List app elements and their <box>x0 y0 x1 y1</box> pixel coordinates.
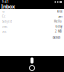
staticText: Date <box>2 25 8 28</box>
staticText: Send <box>53 36 60 39</box>
staticText: Size <box>2 30 7 33</box>
staticText: Alex <box>57 10 62 13</box>
staticText: Today <box>55 25 62 28</box>
staticText: Sam <box>58 15 62 18</box>
staticText: 9:41 <box>2 0 9 4</box>
staticText: Cc <box>2 15 5 18</box>
staticText: To <box>2 10 5 13</box>
button[interactable]: Send <box>52 36 61 39</box>
staticText: Inbox <box>1 3 15 10</box>
staticText: Subject <box>2 20 12 23</box>
staticText: Hello <box>54 20 62 23</box>
staticText: 2 MB <box>55 30 62 33</box>
